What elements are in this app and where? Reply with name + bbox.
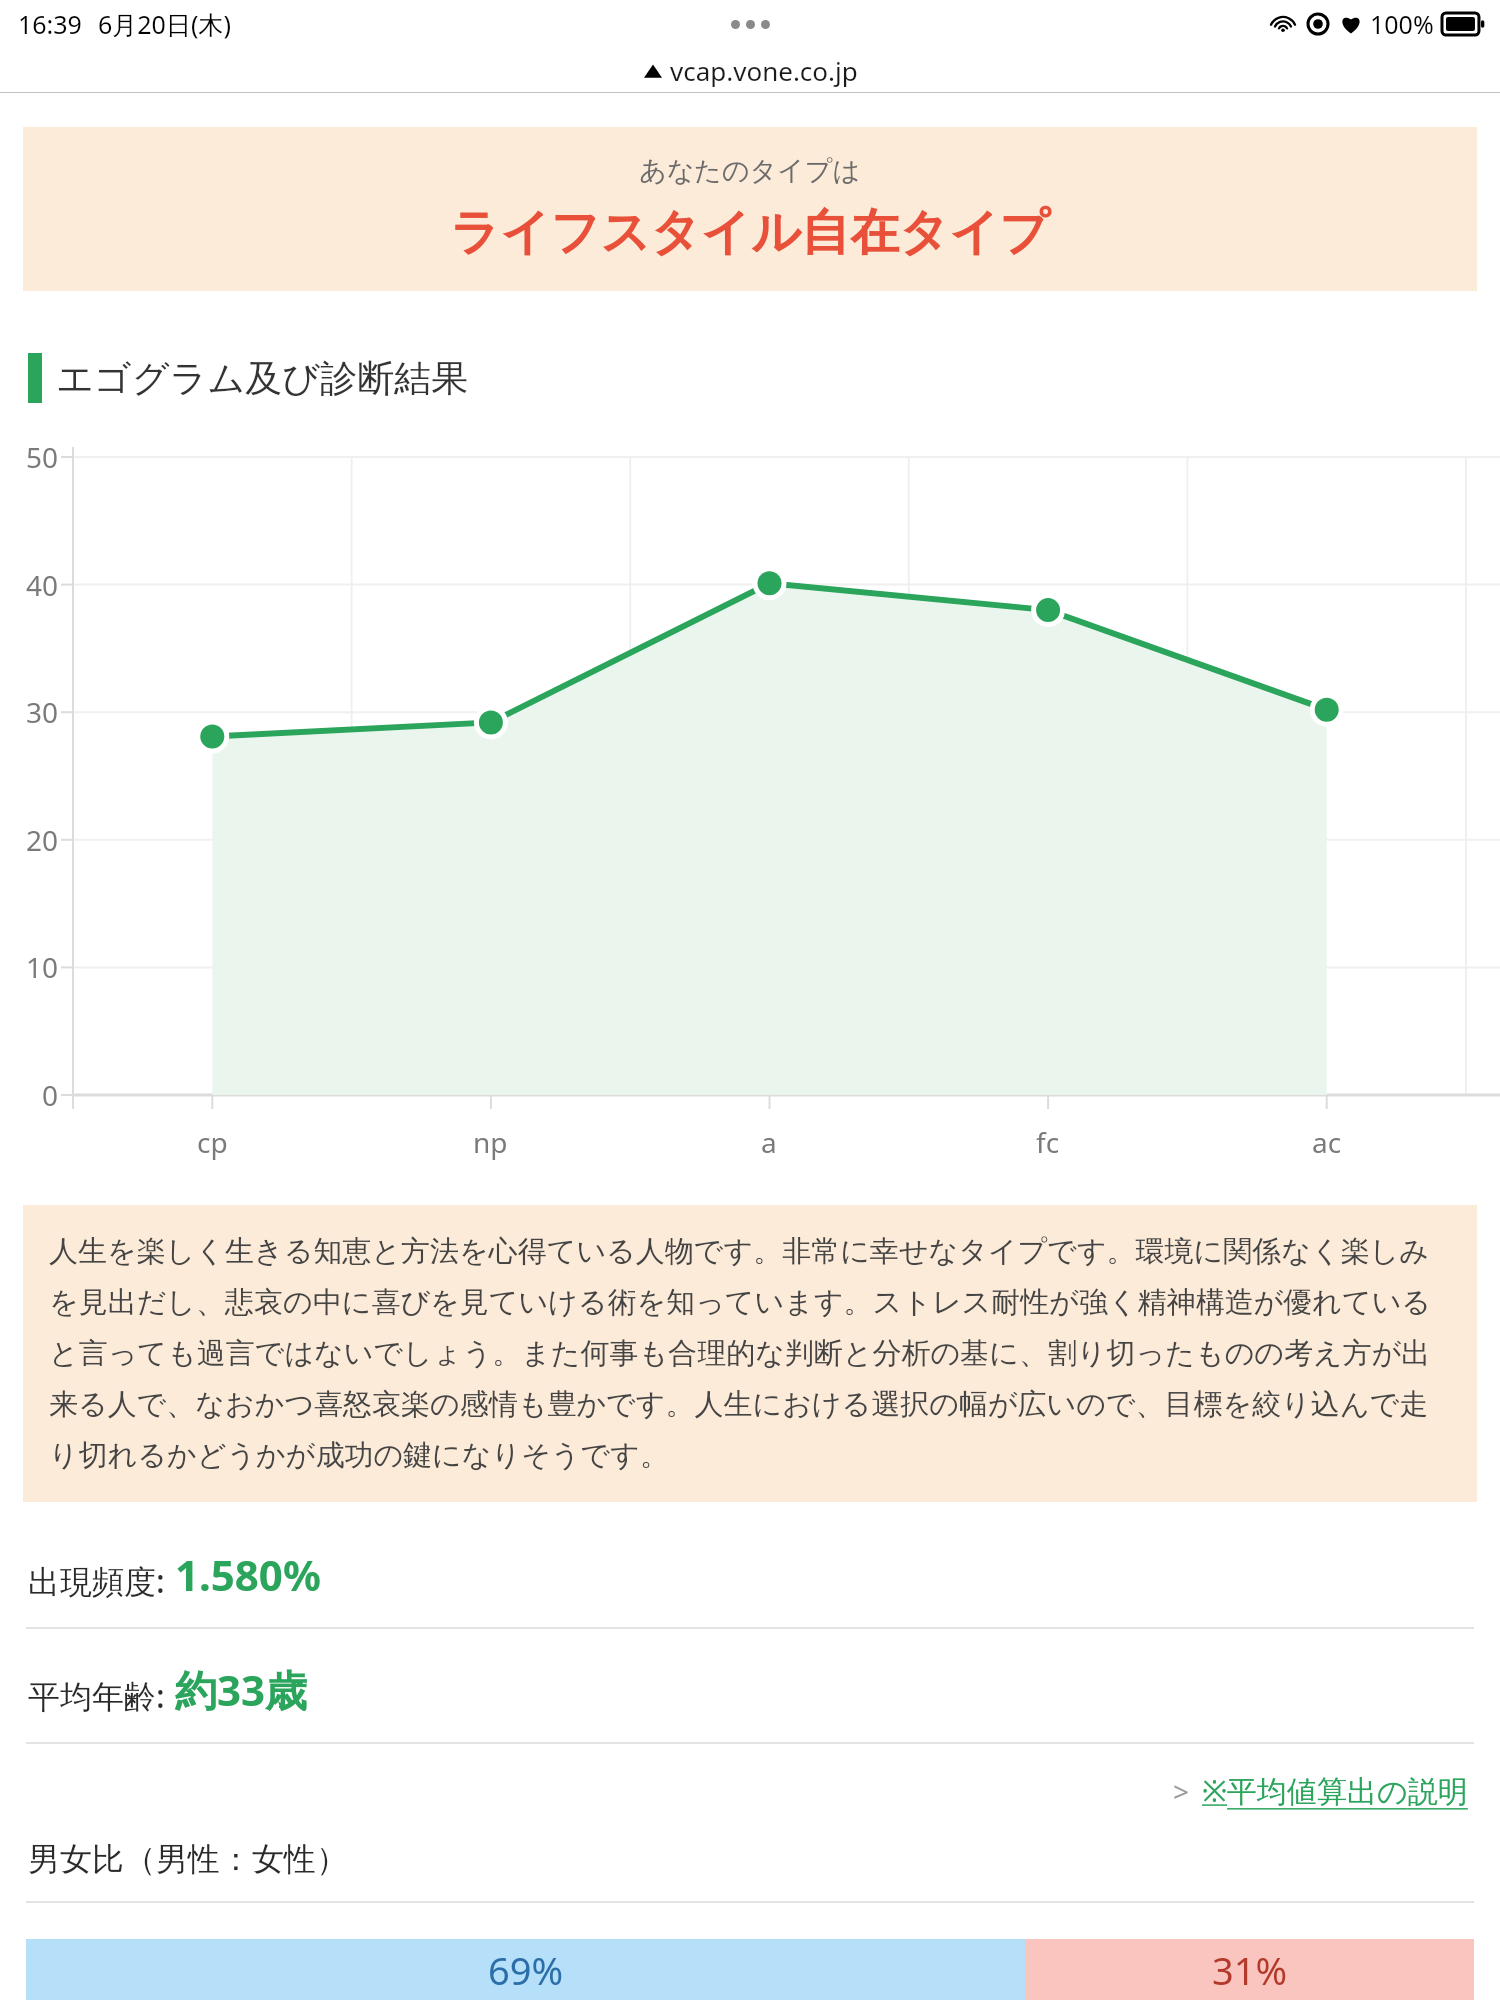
staticText: 10 bbox=[0, 948, 58, 986]
staticText: 30 bbox=[0, 693, 58, 731]
staticText: 16:39 bbox=[18, 7, 82, 41]
staticText: 1.580% bbox=[175, 1546, 321, 1603]
staticText: np bbox=[473, 1123, 508, 1161]
staticText: 40 bbox=[0, 566, 58, 604]
staticText: cp bbox=[197, 1123, 228, 1161]
button[interactable]: あなたのタイプは bbox=[23, 127, 1477, 291]
staticText: 20 bbox=[0, 821, 58, 859]
staticText: ライフスタイル自在タイプ bbox=[450, 202, 1050, 264]
staticText: a bbox=[761, 1123, 777, 1161]
staticText: 男女比（男性：女性） bbox=[28, 1839, 348, 1879]
staticText: fc bbox=[1036, 1123, 1060, 1161]
staticText: 100% bbox=[1370, 7, 1434, 41]
button[interactable]: vcap.vone.co.jp bbox=[643, 53, 858, 88]
staticText: あなたのタイプは bbox=[639, 154, 861, 188]
staticText: エゴグラム及び診断結果 bbox=[56, 355, 469, 402]
staticText: 31% bbox=[1212, 1944, 1288, 1996]
staticText: vcap.vone.co.jp bbox=[670, 53, 858, 88]
button[interactable]: 31% bbox=[1025, 1939, 1474, 2000]
staticText: 50 bbox=[0, 438, 58, 476]
staticText: 人生を楽しく生きる知恵と方法を心得ている人物です。非常に幸せなタイプです。環境に… bbox=[49, 1233, 1451, 1474]
staticText: 6月20日(木) bbox=[98, 7, 231, 41]
button[interactable]: > bbox=[1167, 1764, 1474, 1817]
staticText: ※平均値算出の説明 bbox=[1202, 1770, 1468, 1811]
staticText: > bbox=[1173, 1772, 1190, 1810]
button[interactable]: 69% bbox=[26, 1939, 1025, 2000]
staticText: ac bbox=[1312, 1123, 1342, 1161]
staticText: 平均年齢: bbox=[28, 1674, 165, 1718]
staticText: 69% bbox=[488, 1944, 564, 1996]
staticText: 出現頻度: bbox=[28, 1559, 165, 1603]
staticText: 約33歳 bbox=[175, 1661, 308, 1718]
staticText: 0 bbox=[0, 1076, 58, 1114]
